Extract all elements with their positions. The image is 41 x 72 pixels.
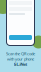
- staticText: with your phone: [7, 56, 34, 62]
- staticText: GL.iNet: [13, 62, 27, 67]
- staticText: Scan the QR code: [6, 51, 35, 56]
